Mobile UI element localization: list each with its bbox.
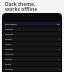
- button[interactable]: Storage: [3, 47, 61, 51]
- staticText: About: [5, 63, 11, 66]
- staticText: Storage: [5, 68, 13, 71]
- button[interactable]: Account: [3, 52, 61, 56]
- button[interactable]: Storage: [3, 67, 61, 71]
- button[interactable]: Account: [3, 32, 61, 36]
- staticText: Account: [5, 33, 13, 36]
- button[interactable]: About: [3, 62, 61, 66]
- staticText: Dark theme, works offline: [5, 1, 38, 12]
- button[interactable]: Privacy: [3, 37, 61, 41]
- staticText: Privacy: [5, 38, 12, 41]
- button[interactable]: Dark theme: [3, 22, 61, 26]
- staticText: About: [5, 43, 11, 46]
- button[interactable]: Privacy: [3, 57, 61, 61]
- staticText: Privacy: [5, 58, 12, 61]
- staticText: Storage: [5, 48, 13, 51]
- staticText: Account: [5, 53, 13, 56]
- button[interactable]: Toggle: [57, 24, 60, 25]
- staticText: Dark theme: [5, 23, 17, 26]
- button[interactable]: Storage: [3, 27, 61, 31]
- button[interactable]: About: [3, 42, 61, 46]
- staticText: Storage: [5, 28, 13, 31]
